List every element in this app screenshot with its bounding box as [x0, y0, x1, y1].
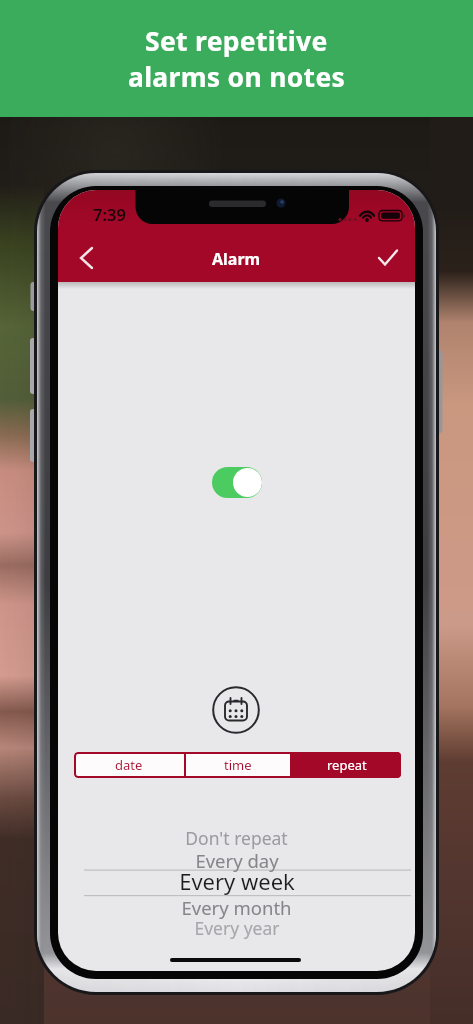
button[interactable]: date: [74, 752, 184, 778]
staticText: time: [224, 756, 252, 774]
staticText: Alarm: [212, 248, 261, 270]
staticText: Every month: [181, 895, 292, 920]
button[interactable]: Don't repeat: [58, 823, 415, 853]
button[interactable]: [66, 238, 106, 278]
button[interactable]: [212, 467, 262, 498]
button[interactable]: repeat: [292, 752, 401, 778]
button[interactable]: [212, 686, 260, 734]
staticText: Every day: [195, 848, 279, 873]
staticText: Every week: [179, 866, 295, 896]
button[interactable]: Every year: [58, 913, 415, 943]
button[interactable]: time: [186, 752, 290, 778]
staticText: 7:39: [93, 203, 126, 225]
staticText: alarms on notes: [128, 59, 346, 95]
button[interactable]: Every day: [58, 845, 415, 875]
staticText: Every year: [194, 916, 280, 940]
button[interactable]: Every month: [58, 892, 415, 922]
button[interactable]: [368, 238, 408, 278]
staticText: date: [115, 756, 143, 774]
staticText: repeat: [327, 756, 367, 774]
staticText: Set repetitive: [145, 23, 328, 59]
staticText: Don't repeat: [185, 826, 288, 850]
button[interactable]: Every week: [58, 866, 415, 896]
